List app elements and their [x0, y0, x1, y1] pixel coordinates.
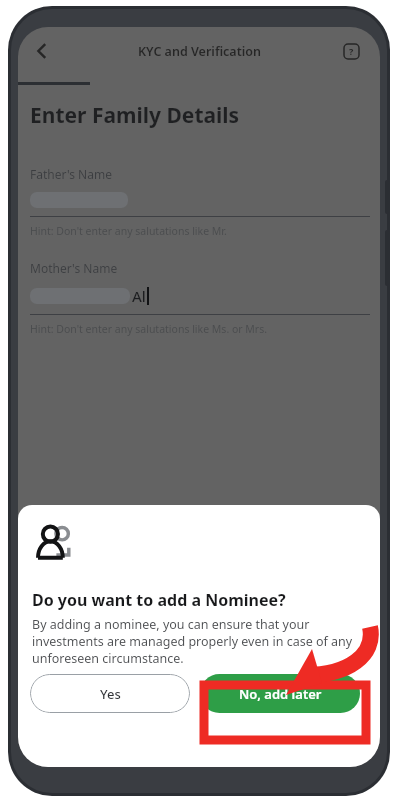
button[interactable]: Back [24, 33, 60, 69]
staticText: ? [349, 45, 354, 57]
staticText: Enter Family Details [30, 101, 240, 130]
staticText: Hint: Don't enter any salutations like M… [30, 322, 268, 336]
button[interactable]: Yes [30, 674, 190, 713]
staticText: Hint: Don't enter any salutations like M… [30, 224, 227, 238]
staticText: Father's Name [30, 166, 112, 182]
staticText: Do you want to add a Nominee? [32, 589, 286, 611]
button[interactable]: No, add later [200, 674, 360, 713]
staticText: Al [132, 286, 146, 306]
staticText: Yes [100, 685, 121, 703]
staticText: KYC and Verification [138, 43, 261, 60]
button[interactable]: Help [336, 36, 366, 66]
staticText: Mother's Name [30, 260, 118, 276]
staticText: No, add later [239, 685, 322, 703]
staticText: By adding a nominee, you can ensure that… [32, 616, 366, 667]
